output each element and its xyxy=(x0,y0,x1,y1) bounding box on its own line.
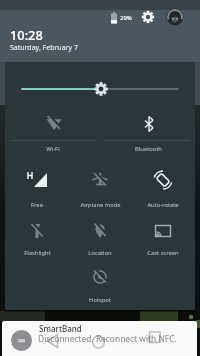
button[interactable] xyxy=(141,326,168,351)
staticText: Bluetooth xyxy=(135,145,162,153)
button[interactable] xyxy=(5,75,195,103)
button[interactable] xyxy=(69,217,132,265)
button[interactable] xyxy=(39,329,66,354)
staticText: Free xyxy=(31,201,43,209)
button[interactable] xyxy=(6,166,69,214)
button[interactable] xyxy=(6,217,69,265)
button[interactable] xyxy=(132,166,195,214)
button[interactable] xyxy=(6,112,101,164)
staticText: Hotspot xyxy=(89,296,111,304)
staticText: Airplane mode xyxy=(80,201,121,209)
staticText: Location xyxy=(88,249,112,257)
staticText: Flashlight xyxy=(24,249,51,257)
button[interactable] xyxy=(69,166,132,214)
staticText: Auto-rotate xyxy=(147,201,179,209)
button[interactable] xyxy=(101,112,195,164)
button[interactable] xyxy=(140,10,156,26)
staticText: Disconnected. Reconnect with NFC. xyxy=(38,333,177,344)
button[interactable] xyxy=(166,8,184,26)
staticText: Saturday, February 7 xyxy=(10,43,78,53)
button[interactable] xyxy=(85,329,112,354)
button[interactable] xyxy=(69,263,132,309)
staticText: SmartBand xyxy=(39,323,82,334)
staticText: 10:28 xyxy=(10,26,43,43)
staticText: Wi-Fi xyxy=(46,145,60,153)
staticText: Cast screen xyxy=(147,249,179,257)
button[interactable] xyxy=(132,217,195,265)
staticText: 29% xyxy=(120,14,132,22)
button[interactable]: SmartBand xyxy=(2,321,197,356)
